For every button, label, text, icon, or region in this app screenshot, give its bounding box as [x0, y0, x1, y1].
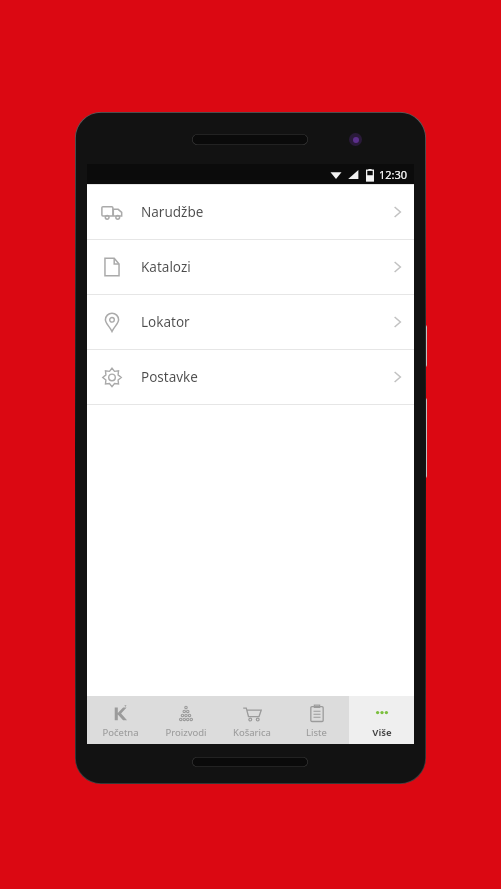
staticText: Početna	[102, 726, 139, 739]
staticText: Postavke	[141, 368, 198, 386]
staticText: Lokator	[141, 313, 190, 331]
button[interactable]: Početna	[87, 696, 153, 744]
staticText: 12:30	[379, 167, 408, 182]
button[interactable]: Košarica	[219, 696, 284, 744]
staticText: Proizvodi	[165, 726, 207, 739]
button[interactable]: Postavke	[87, 350, 414, 404]
staticText: Liste	[306, 726, 327, 739]
staticText: Više	[372, 726, 392, 739]
staticText: Katalozi	[141, 258, 191, 276]
staticText: Košarica	[233, 726, 271, 739]
button[interactable]: Više	[349, 696, 414, 744]
button[interactable]: Katalozi	[87, 240, 414, 294]
button[interactable]: Lokator	[87, 295, 414, 349]
button[interactable]: Proizvodi	[153, 696, 219, 744]
button[interactable]: Liste	[284, 696, 349, 744]
button[interactable]: Narudžbe	[87, 185, 414, 239]
staticText: Narudžbe	[141, 203, 204, 221]
